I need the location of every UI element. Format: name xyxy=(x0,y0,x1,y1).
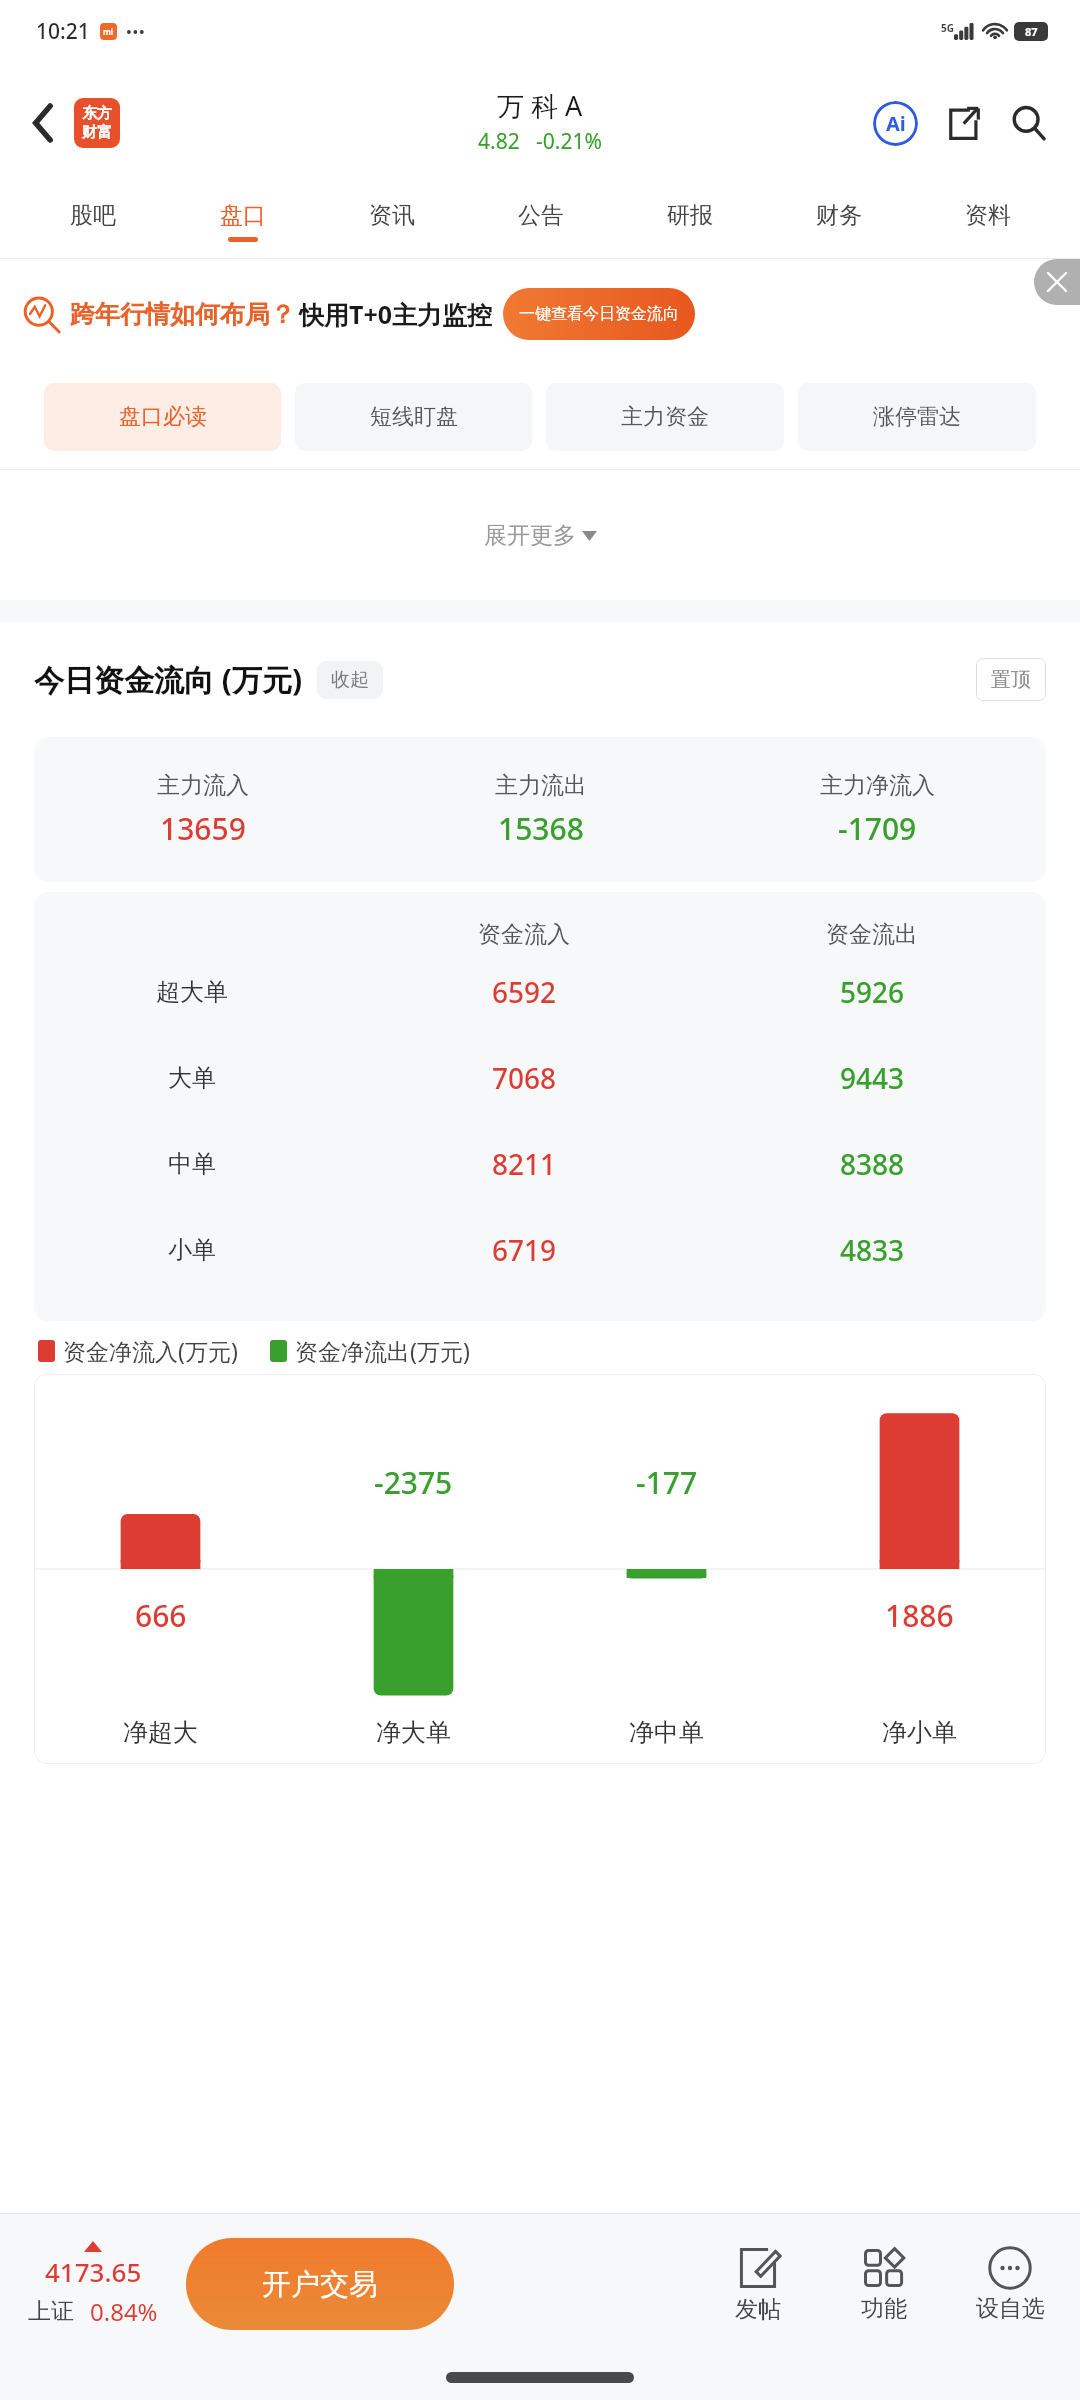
button[interactable]: 4173.65 xyxy=(18,2241,168,2328)
button[interactable]: 收起 xyxy=(331,668,369,692)
staticText: 盘口必读 xyxy=(119,403,207,431)
button[interactable]: Post xyxy=(706,2245,810,2324)
staticText: 公告 xyxy=(518,201,564,230)
button[interactable]: 研报 xyxy=(615,184,764,259)
staticText: 13659 xyxy=(160,808,246,849)
staticText: 收起 xyxy=(331,668,369,692)
button[interactable]: 涨停雷达 xyxy=(798,383,1036,451)
staticText: 0.84% xyxy=(90,2295,158,2328)
staticText: 666 xyxy=(135,1595,187,1636)
button[interactable]: 小单 xyxy=(34,1207,1046,1293)
button[interactable]: AI assistant xyxy=(866,94,924,152)
staticText: 资讯 xyxy=(369,201,415,230)
button[interactable]: 公告 xyxy=(466,184,615,259)
button[interactable]: Share xyxy=(934,94,992,152)
button[interactable]: Add to watchlist xyxy=(958,2246,1062,2323)
staticText: 小单 xyxy=(34,1235,350,1265)
staticText: 净超大 xyxy=(123,1717,198,1748)
staticText: 资金净流入(万元) xyxy=(63,1335,238,1366)
staticText: Ai xyxy=(886,110,906,137)
staticText: 主力资金 xyxy=(621,403,709,431)
button[interactable]: 东方财富 xyxy=(74,98,120,148)
staticText: 财务 xyxy=(816,201,862,230)
staticText: 5G xyxy=(941,21,954,35)
staticText: 9443 xyxy=(698,1059,1046,1097)
staticText: 研报 xyxy=(667,201,713,230)
staticText: 资金流入 xyxy=(350,920,698,949)
button[interactable]: 股吧 xyxy=(18,184,168,259)
button[interactable]: Functions xyxy=(832,2246,936,2323)
button[interactable]: 一键查看今日资金流向 xyxy=(519,288,679,340)
button[interactable]: 展开更多 xyxy=(0,470,1080,600)
staticText: 6592 xyxy=(350,973,698,1011)
button[interactable]: 中单 xyxy=(34,1121,1046,1207)
staticText: 发帖 xyxy=(735,2295,781,2324)
button[interactable]: 开户交易 xyxy=(186,2238,454,2330)
staticText: 短线盯盘 xyxy=(370,403,458,431)
staticText: 资金流出 xyxy=(698,920,1046,949)
staticText: 净小单 xyxy=(882,1717,957,1748)
staticText: 置顶 xyxy=(991,667,1031,692)
button[interactable]: 跨年行情如何布局？ xyxy=(22,259,1066,369)
staticText: 一键查看今日资金流向 xyxy=(519,304,679,324)
staticText: 8388 xyxy=(698,1145,1046,1183)
staticText: 资料 xyxy=(965,201,1011,230)
staticText: 快用T+0主力监控 xyxy=(299,297,493,331)
staticText: 上证 xyxy=(28,2297,74,2326)
staticText: 1886 xyxy=(885,1595,954,1636)
button[interactable]: Close ad xyxy=(1034,259,1080,305)
staticText: -0.21% xyxy=(536,127,602,156)
button[interactable]: 超大单 xyxy=(34,949,1046,1035)
staticText: 7068 xyxy=(350,1059,698,1097)
button[interactable]: 盘口 xyxy=(168,184,317,259)
staticText: 5926 xyxy=(698,973,1046,1011)
staticText: 财富 xyxy=(82,123,112,142)
staticText: -1709 xyxy=(838,808,917,849)
staticText: 主力流出 xyxy=(495,771,587,800)
button[interactable]: 大单 xyxy=(34,1035,1046,1121)
staticText: 万 科 A xyxy=(497,87,583,124)
staticText: 净中单 xyxy=(629,1717,704,1748)
staticText: 中单 xyxy=(34,1149,350,1179)
staticText: 6719 xyxy=(350,1231,698,1269)
button[interactable]: 资料 xyxy=(913,184,1062,259)
button[interactable]: 财务 xyxy=(764,184,913,259)
staticText: 资金净流出(万元) xyxy=(295,1335,470,1366)
staticText: -2375 xyxy=(374,1462,453,1503)
staticText: 15368 xyxy=(498,808,584,849)
staticText: 8211 xyxy=(350,1145,698,1183)
staticText: 涨停雷达 xyxy=(873,403,961,431)
staticText: 设自选 xyxy=(976,2294,1045,2323)
staticText: 股吧 xyxy=(70,201,116,230)
button[interactable]: 短线盯盘 xyxy=(295,383,532,451)
staticText: 展开更多 xyxy=(484,521,576,550)
button[interactable]: 置顶 xyxy=(991,667,1031,692)
staticText: 主力流入 xyxy=(157,771,249,800)
staticText: 4.82 xyxy=(478,127,520,156)
staticText: 东方 xyxy=(82,104,112,123)
staticText: 10:21 xyxy=(36,17,90,46)
staticText: 开户交易 xyxy=(262,2266,378,2303)
staticText: 4833 xyxy=(698,1231,1046,1269)
staticText: 超大单 xyxy=(34,977,350,1007)
button[interactable]: 盘口必读 xyxy=(44,383,281,451)
button[interactable]: 主力资金 xyxy=(546,383,784,451)
staticText: 功能 xyxy=(861,2294,907,2323)
staticText: 大单 xyxy=(34,1063,350,1093)
staticText: 87 xyxy=(1025,24,1038,39)
staticText: 盘口 xyxy=(220,201,266,230)
button[interactable]: 资讯 xyxy=(317,184,466,259)
staticText: 净大单 xyxy=(376,1717,451,1748)
staticText: 4173.65 xyxy=(45,2254,142,2289)
staticText: 跨年行情如何布局？ xyxy=(70,299,295,330)
button[interactable]: Search xyxy=(1000,94,1058,152)
staticText: mi xyxy=(103,26,114,37)
staticText: 主力净流入 xyxy=(820,771,935,800)
staticText: 今日资金流向 (万元) xyxy=(34,659,303,700)
staticText: -177 xyxy=(636,1462,698,1503)
button[interactable]: Back xyxy=(18,97,70,149)
